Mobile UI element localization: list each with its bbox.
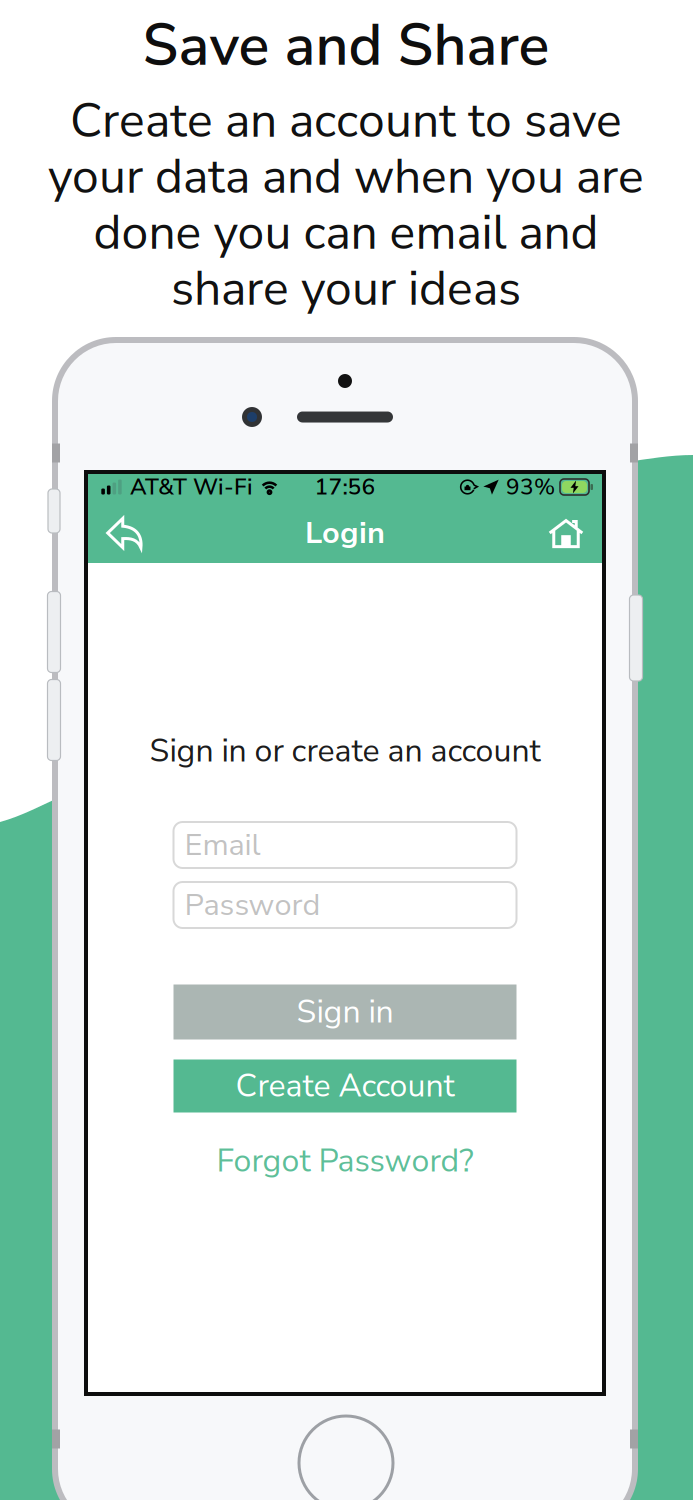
staticText: your data and when you are <box>48 144 644 210</box>
staticText: Create Account <box>235 1064 454 1108</box>
staticText: Forgot Password? <box>216 1139 473 1183</box>
staticText: Login <box>305 512 385 554</box>
button[interactable]: Back <box>94 503 155 562</box>
button[interactable]: Home <box>536 503 596 562</box>
button[interactable]: Create Account <box>173 1059 516 1112</box>
staticText: Create an account to save <box>70 88 622 154</box>
button[interactable]: Forgot Password? <box>173 1139 516 1183</box>
staticText: 93% <box>506 471 555 502</box>
staticText: Sign in or create an account <box>149 729 540 773</box>
staticText: Save and Share <box>142 7 549 85</box>
staticText: 17:56 <box>314 471 375 502</box>
staticText: Email <box>184 824 260 866</box>
staticText: share your ideas <box>171 256 521 322</box>
staticText: Password <box>184 884 320 926</box>
staticText: done you can email and <box>93 200 598 266</box>
staticText: Sign in <box>296 990 393 1034</box>
button[interactable]: Sign in <box>173 984 516 1039</box>
staticText: AT&T Wi-Fi <box>130 471 253 502</box>
